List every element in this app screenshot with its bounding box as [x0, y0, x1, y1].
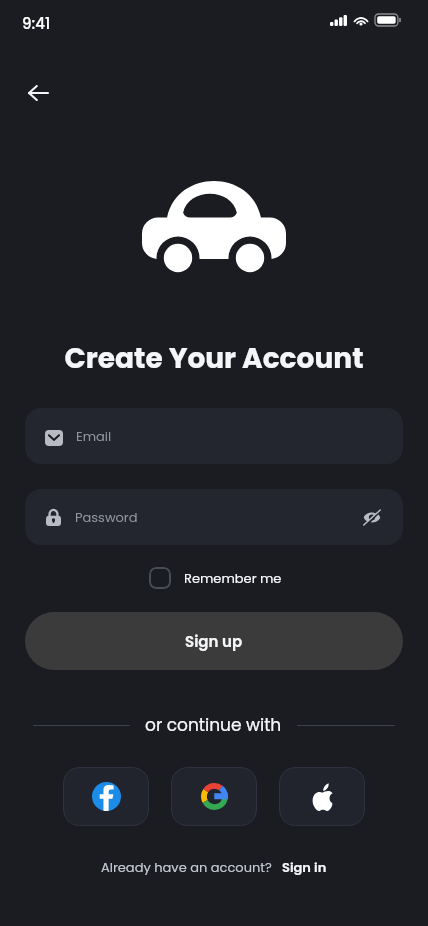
staticText: Already have an account? [101, 858, 272, 876]
button[interactable]: Sign in [282, 858, 327, 876]
staticText: Sign in [282, 858, 327, 876]
staticText: Create Your Account [0, 339, 428, 378]
button[interactable]: Back [14, 69, 61, 116]
button[interactable]: Sign up with Apple [279, 767, 365, 826]
button[interactable]: Remember me [149, 564, 282, 592]
staticText: Remember me [184, 569, 282, 587]
staticText: Email [76, 427, 112, 445]
button[interactable]: Sign up [25, 612, 403, 670]
button[interactable]: Sign up with Facebook [63, 767, 149, 826]
button[interactable]: Show password [359, 504, 385, 530]
staticText: Password [75, 508, 359, 526]
button[interactable]: Email [25, 408, 403, 464]
staticText: 9:41 [22, 13, 51, 34]
staticText: or continue with [145, 713, 282, 737]
staticText: Sign up [185, 631, 243, 652]
button[interactable]: Password [25, 489, 403, 545]
button[interactable]: Sign up with Google [171, 767, 257, 826]
